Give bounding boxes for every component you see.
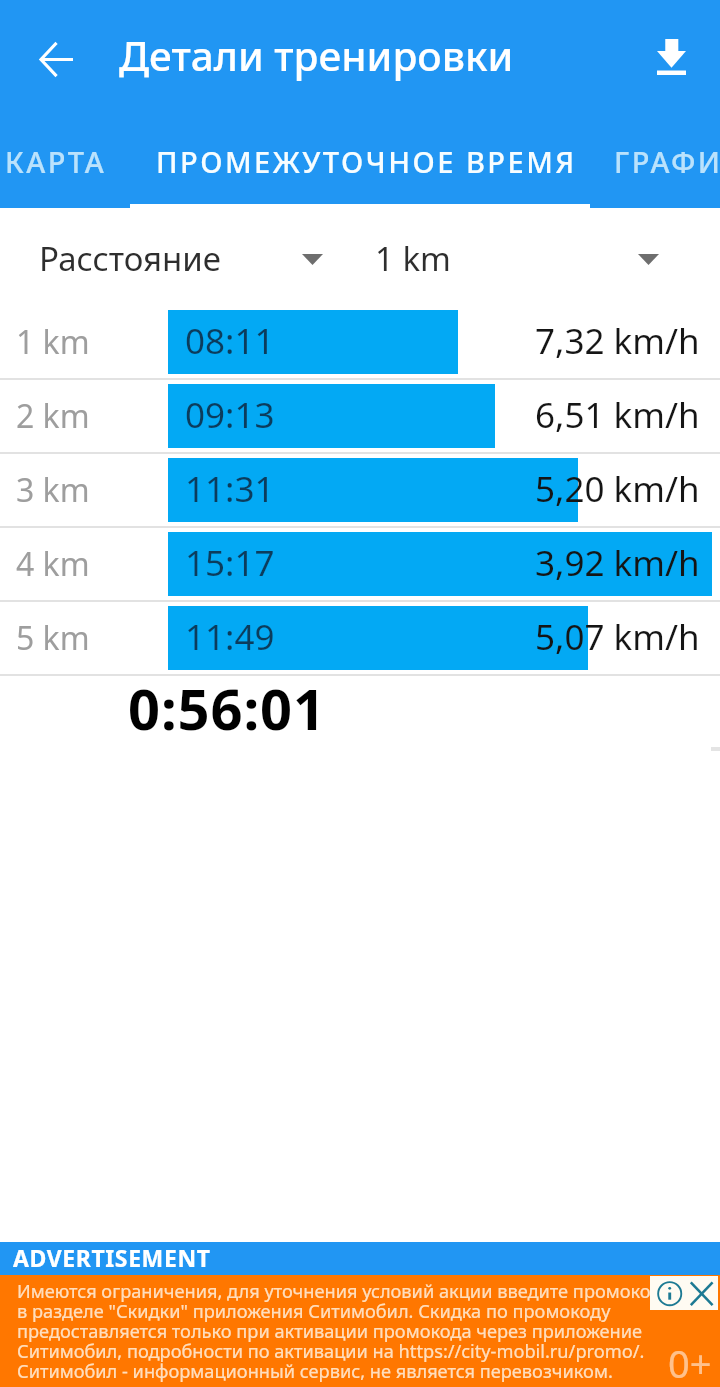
button[interactable]: Download xyxy=(639,25,703,89)
staticText: 11:31 xyxy=(185,465,275,513)
button[interactable]: 1 km xyxy=(360,208,720,305)
staticText: 0+ xyxy=(668,1337,712,1387)
staticText: Детали тренировки xyxy=(119,28,514,83)
button[interactable]: ПРОМЕЖУТОЧНОЕ ВРЕМЯ xyxy=(137,118,595,208)
staticText: ПРОМЕЖУТОЧНОЕ ВРЕМЯ xyxy=(156,142,577,181)
staticText: ADVERTISEMENT xyxy=(13,1242,211,1273)
button[interactable]: 2 km xyxy=(0,379,720,453)
staticText: 5 km xyxy=(16,616,90,660)
button[interactable]: 5 km xyxy=(0,601,720,675)
staticText: 1 km xyxy=(16,320,90,364)
staticText: 2 km xyxy=(16,394,90,438)
button[interactable]: Расстояние xyxy=(0,208,360,305)
button[interactable]: 1 km xyxy=(0,305,720,379)
button[interactable]: Back xyxy=(24,27,88,91)
staticText: 1 km xyxy=(375,236,451,281)
staticText: 3 km xyxy=(16,468,90,512)
staticText: Ситимобил - информационный сервис, не яв… xyxy=(17,1359,613,1384)
staticText: 6,51 km/h xyxy=(535,391,700,439)
button[interactable]: ГРАФИ xyxy=(589,118,720,208)
staticText: Ситимобил, подробности по активации на h… xyxy=(17,1339,645,1364)
staticText: ГРАФИ xyxy=(614,142,720,181)
staticText: в разделе "Скидки" приложения Ситимобил.… xyxy=(17,1299,611,1324)
staticText: 11:49 xyxy=(185,613,275,661)
button[interactable]: КАРТА xyxy=(0,118,134,208)
staticText: 5,20 km/h xyxy=(535,465,700,513)
staticText: 4 km xyxy=(16,542,90,586)
button[interactable]: 3 km xyxy=(0,453,720,527)
button[interactable]: Ad choices xyxy=(650,1276,718,1310)
button[interactable]: 4 km xyxy=(0,527,720,601)
staticText: 09:13 xyxy=(185,391,275,439)
staticText: Расстояние xyxy=(39,236,221,281)
staticText: 7,32 km/h xyxy=(535,317,700,365)
staticText: 0:56:01 xyxy=(128,670,326,746)
staticText: 3,92 km/h xyxy=(535,539,700,587)
staticText: 15:17 xyxy=(185,539,275,587)
staticText: 08:11 xyxy=(185,317,275,365)
staticText: предоставляется только при активации про… xyxy=(17,1319,643,1344)
staticText: КАРТА xyxy=(5,142,107,181)
staticText: 5,07 km/h xyxy=(535,613,700,661)
staticText: Имеются ограничения, для уточнения услов… xyxy=(17,1279,662,1304)
